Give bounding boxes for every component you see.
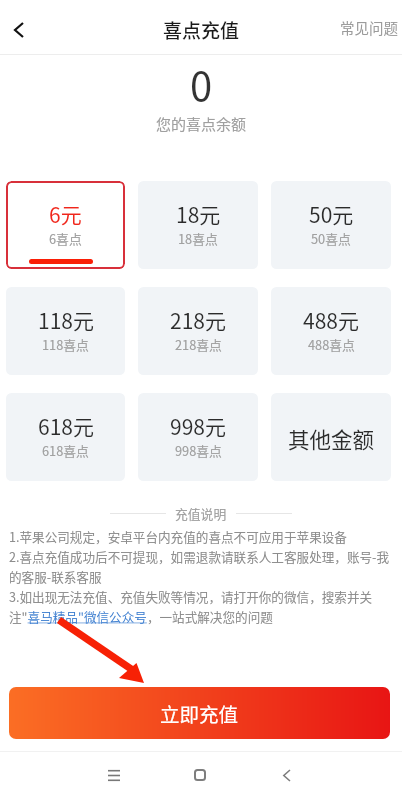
button[interactable]: 6元 bbox=[6, 181, 125, 269]
button[interactable]: 998元 bbox=[138, 393, 258, 481]
staticText: 充值说明 bbox=[175, 504, 227, 523]
button[interactable]: 18元 bbox=[138, 181, 258, 269]
button[interactable]: 218元 bbox=[138, 287, 258, 375]
button[interactable]: 488元 bbox=[271, 287, 391, 375]
button[interactable]: Home bbox=[177, 752, 223, 798]
button[interactable]: 618元 bbox=[6, 393, 125, 481]
button[interactable]: Back bbox=[0, 7, 42, 53]
staticText: 118元 bbox=[38, 305, 94, 335]
staticText: 常见问题 bbox=[340, 17, 398, 38]
button[interactable]: 其他金额 bbox=[271, 393, 391, 481]
staticText: 488元 bbox=[303, 305, 359, 335]
staticText: 6元 bbox=[49, 199, 82, 229]
staticText: 998喜点 bbox=[175, 441, 222, 460]
button[interactable]: Recent apps bbox=[91, 752, 137, 798]
staticText: 618元 bbox=[38, 411, 94, 441]
button[interactable]: 118元 bbox=[6, 287, 125, 375]
staticText: 立即充值 bbox=[160, 699, 239, 727]
staticText: 喜点充值 bbox=[163, 16, 240, 44]
staticText: 618喜点 bbox=[42, 441, 89, 460]
staticText: 18元 bbox=[176, 199, 221, 229]
button[interactable]: Back bbox=[263, 752, 309, 798]
staticText: 50元 bbox=[309, 199, 354, 229]
staticText: 其他金额 bbox=[288, 423, 375, 454]
staticText: 50喜点 bbox=[311, 229, 351, 248]
button[interactable]: 立即充值 bbox=[9, 687, 390, 739]
staticText: 6喜点 bbox=[49, 229, 82, 248]
button[interactable]: 50元 bbox=[271, 181, 391, 269]
staticText: 118喜点 bbox=[42, 335, 89, 354]
button[interactable]: 常见问题 bbox=[330, 7, 402, 48]
staticText: 您的喜点余额 bbox=[156, 113, 247, 135]
staticText: 218喜点 bbox=[175, 335, 222, 354]
staticText: 998元 bbox=[170, 411, 226, 441]
staticText: 488喜点 bbox=[308, 335, 355, 354]
staticText: 1.苹果公司规定，安卓平台内充值的喜点不可应用于苹果设备 2.喜点充值成功后不可… bbox=[9, 527, 393, 625]
staticText: 0 bbox=[190, 55, 213, 113]
staticText: 18喜点 bbox=[178, 229, 218, 248]
staticText: 218元 bbox=[170, 305, 226, 335]
